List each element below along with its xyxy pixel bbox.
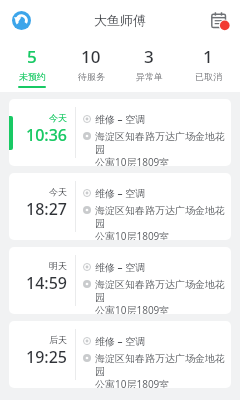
staticText: 异常单 [136,71,163,82]
staticText: 14:59 [26,272,67,294]
staticText: 明天 [49,260,67,271]
button[interactable]: Back [5,4,37,36]
button[interactable]: 3 [122,40,176,92]
button[interactable]: Schedule [204,5,234,35]
staticText: 3 [144,45,154,68]
staticText: 10 [81,45,101,68]
staticText: 10:36 [26,124,67,146]
staticText: 1 [203,45,213,68]
staticText: 维修 – 空调 [95,112,146,126]
staticText: 海淀区知春路万达广场金地花园 公寓10层1809室 [95,130,225,166]
staticText: 海淀区知春路万达广场金地花园 公寓10层1809室 [95,204,225,240]
staticText: 今天 [49,112,67,123]
button[interactable]: 5 [5,40,59,92]
button[interactable]: 10 [64,40,118,92]
button[interactable]: 1 [181,40,235,92]
staticText: 维修 – 空调 [95,334,146,348]
staticText: 18:27 [26,198,67,220]
staticText: 已取消 [195,71,222,82]
staticText: 未预约 [19,71,46,82]
staticText: 海淀区知春路万达广场金地花园 公寓10层1809室 [95,278,225,314]
staticText: 后天 [49,334,67,345]
button[interactable]: 明天 [9,247,231,314]
button[interactable]: 今天 [9,99,231,166]
staticText: 今天 [49,186,67,197]
staticText: 海淀区知春路万达广场金地花园 公寓10层1809室 [95,352,225,388]
button[interactable]: 后天 [9,321,231,388]
staticText: 维修 – 空调 [95,186,146,200]
staticText: 19:25 [26,346,67,368]
staticText: 待服务 [78,71,105,82]
staticText: 维修 – 空调 [95,260,146,274]
button[interactable]: 今天 [9,173,231,240]
staticText: 5 [27,45,37,68]
staticText: 大鱼师傅 [94,12,146,28]
